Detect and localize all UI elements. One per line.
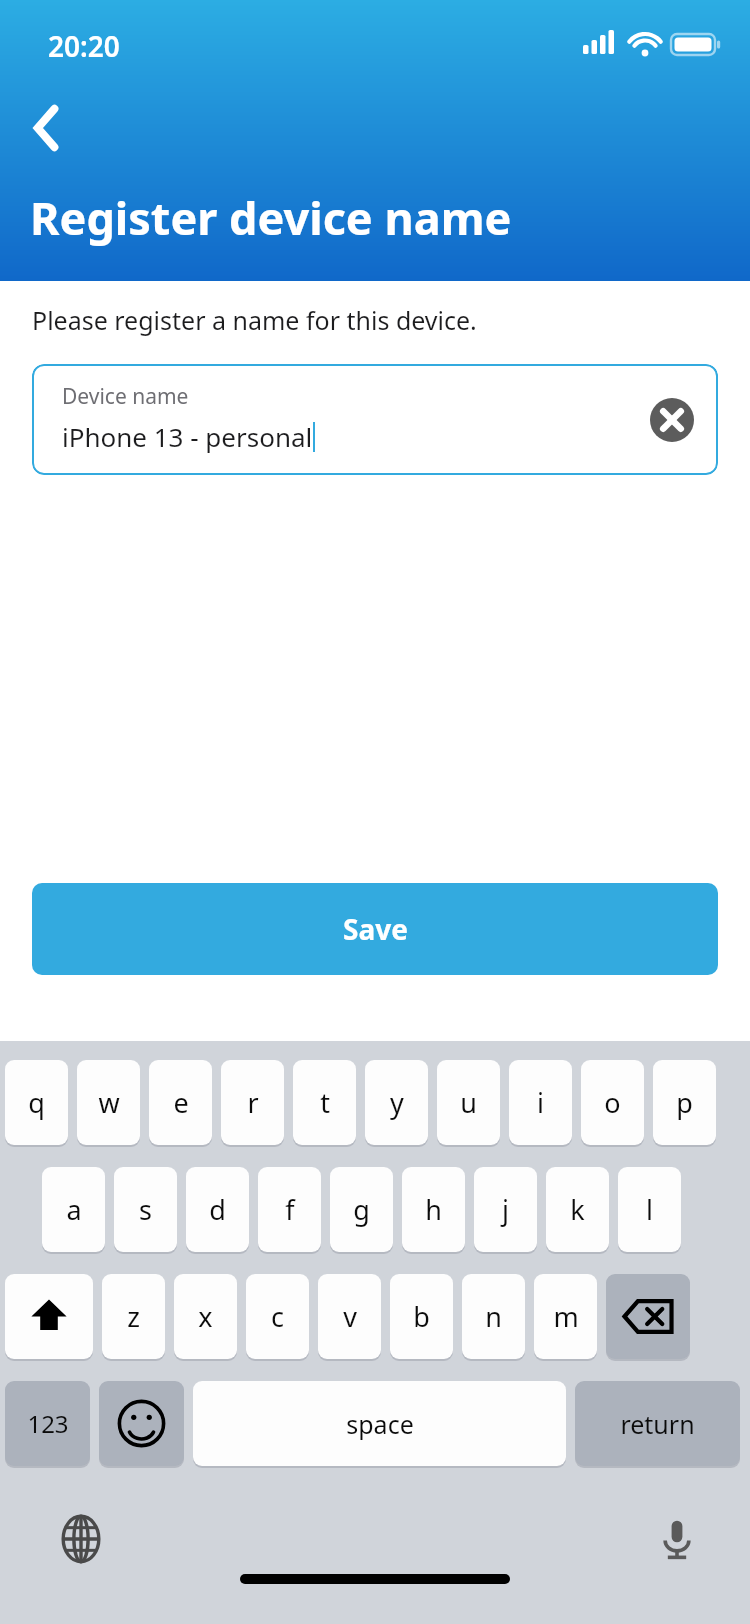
staticText: 123 xyxy=(27,1407,69,1440)
button[interactable]: s xyxy=(114,1167,177,1252)
button[interactable]: j xyxy=(474,1167,537,1252)
button[interactable]: k xyxy=(546,1167,609,1252)
staticText: return xyxy=(620,1407,695,1441)
staticText: Save xyxy=(343,910,408,948)
button[interactable]: a xyxy=(42,1167,105,1252)
staticText: h xyxy=(425,1191,442,1228)
staticText: e xyxy=(173,1084,189,1121)
staticText: v xyxy=(343,1298,357,1335)
staticText: y xyxy=(390,1084,404,1121)
staticText: Please register a name for this device. xyxy=(32,303,477,337)
button[interactable]: m xyxy=(534,1274,597,1359)
staticText: w xyxy=(98,1084,120,1121)
staticText: o xyxy=(604,1084,621,1121)
button[interactable]: z xyxy=(102,1274,165,1359)
button[interactable]: o xyxy=(581,1060,644,1145)
button[interactable]: u xyxy=(437,1060,500,1145)
staticText: k xyxy=(570,1191,585,1228)
button[interactable]: b xyxy=(390,1274,453,1359)
staticText: p xyxy=(676,1084,693,1121)
button[interactable]: q xyxy=(5,1060,68,1145)
staticText: a xyxy=(66,1191,82,1228)
button[interactable]: r xyxy=(221,1060,284,1145)
button[interactable]: Shift xyxy=(5,1274,93,1359)
button[interactable]: 123 xyxy=(5,1381,90,1466)
staticText: t xyxy=(320,1084,330,1121)
button[interactable]: e xyxy=(149,1060,212,1145)
staticText: space xyxy=(346,1407,414,1441)
button[interactable]: Back xyxy=(16,96,80,160)
button[interactable]: y xyxy=(365,1060,428,1145)
staticText: x xyxy=(198,1298,213,1335)
button[interactable]: Dictate xyxy=(650,1512,704,1566)
button[interactable]: Save xyxy=(32,883,718,975)
button[interactable]: x xyxy=(174,1274,237,1359)
button[interactable]: f xyxy=(258,1167,321,1252)
button[interactable]: Emoji xyxy=(99,1381,184,1466)
button[interactable]: Change keyboard language xyxy=(54,1512,108,1566)
button[interactable]: d xyxy=(186,1167,249,1252)
staticText: b xyxy=(413,1298,430,1335)
staticText: g xyxy=(353,1191,370,1228)
button[interactable]: return xyxy=(575,1381,740,1466)
staticText: r xyxy=(247,1084,259,1121)
button[interactable]: p xyxy=(653,1060,716,1145)
button[interactable]: w xyxy=(77,1060,140,1145)
staticText: j xyxy=(502,1191,509,1228)
button[interactable]: g xyxy=(330,1167,393,1252)
staticText: m xyxy=(553,1298,579,1335)
staticText: i xyxy=(537,1084,544,1121)
staticText: d xyxy=(209,1191,226,1228)
staticText: iPhone 13 - personal xyxy=(62,419,313,454)
staticText: u xyxy=(460,1084,477,1121)
button[interactable]: Clear text xyxy=(650,398,694,442)
button[interactable]: h xyxy=(402,1167,465,1252)
staticText: f xyxy=(285,1191,295,1228)
staticText: z xyxy=(127,1298,140,1335)
staticText: l xyxy=(646,1191,653,1228)
button[interactable]: c xyxy=(246,1274,309,1359)
button[interactable]: i xyxy=(509,1060,572,1145)
staticText: Device name xyxy=(62,382,189,411)
button[interactable]: Device name xyxy=(32,364,718,475)
button[interactable]: v xyxy=(318,1274,381,1359)
button[interactable]: Backspace xyxy=(606,1274,690,1359)
button[interactable]: t xyxy=(293,1060,356,1145)
button[interactable]: n xyxy=(462,1274,525,1359)
staticText: q xyxy=(28,1084,45,1121)
staticText: s xyxy=(139,1191,152,1228)
button[interactable]: l xyxy=(618,1167,681,1252)
button[interactable]: space xyxy=(193,1381,566,1466)
staticText: 20:20 xyxy=(48,27,120,65)
staticText: Register device name xyxy=(30,187,512,248)
staticText: n xyxy=(485,1298,502,1335)
staticText: c xyxy=(271,1298,284,1335)
